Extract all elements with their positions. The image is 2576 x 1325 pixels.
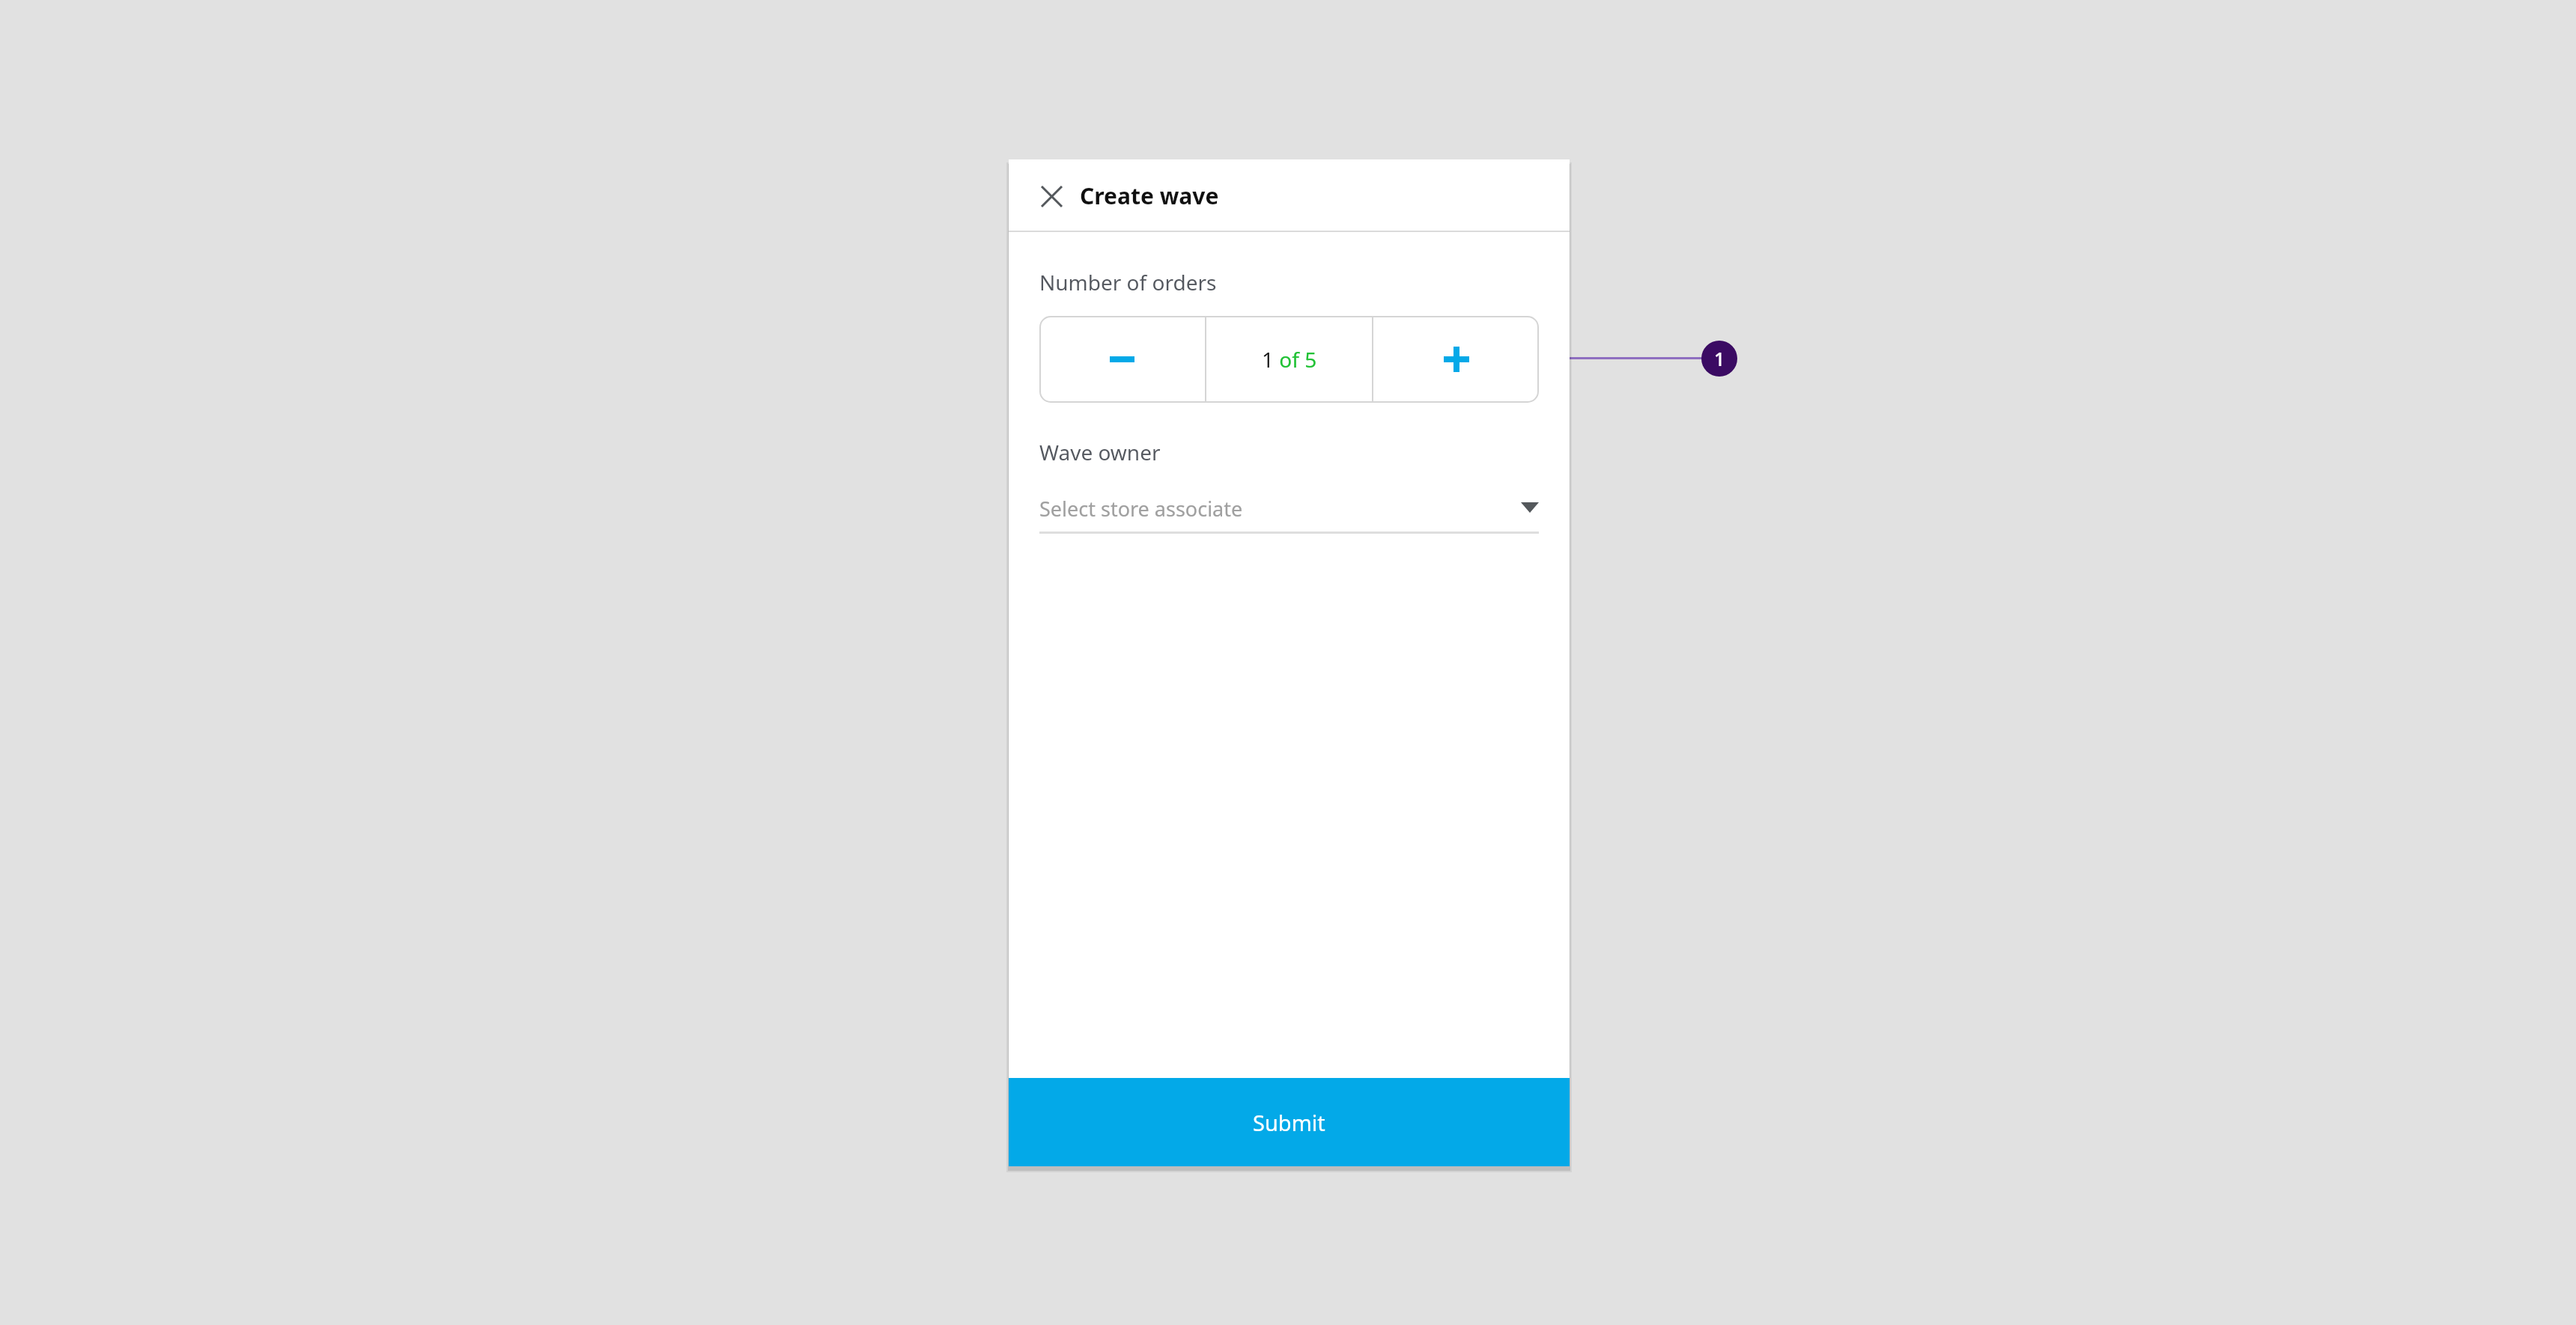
staticText: Select store associate	[1039, 495, 1243, 523]
button[interactable]: Annotation 1	[1701, 341, 1737, 377]
button[interactable]: Decrease number of orders	[1039, 316, 1205, 403]
button[interactable]: Submit	[1009, 1078, 1570, 1166]
staticText: Create wave	[1080, 180, 1219, 211]
staticText: Wave owner	[1039, 438, 1161, 466]
staticText: Number of orders	[1039, 268, 1217, 296]
button[interactable]: Increase number of orders	[1373, 316, 1539, 403]
staticText: 1	[1714, 346, 1725, 371]
staticText: 1 of 5	[1262, 345, 1317, 374]
button[interactable]: Select store associate	[1039, 489, 1539, 534]
button[interactable]: Close	[1033, 178, 1069, 214]
staticText: Submit	[1253, 1108, 1325, 1137]
button[interactable]: 1 of 5	[1206, 316, 1372, 403]
